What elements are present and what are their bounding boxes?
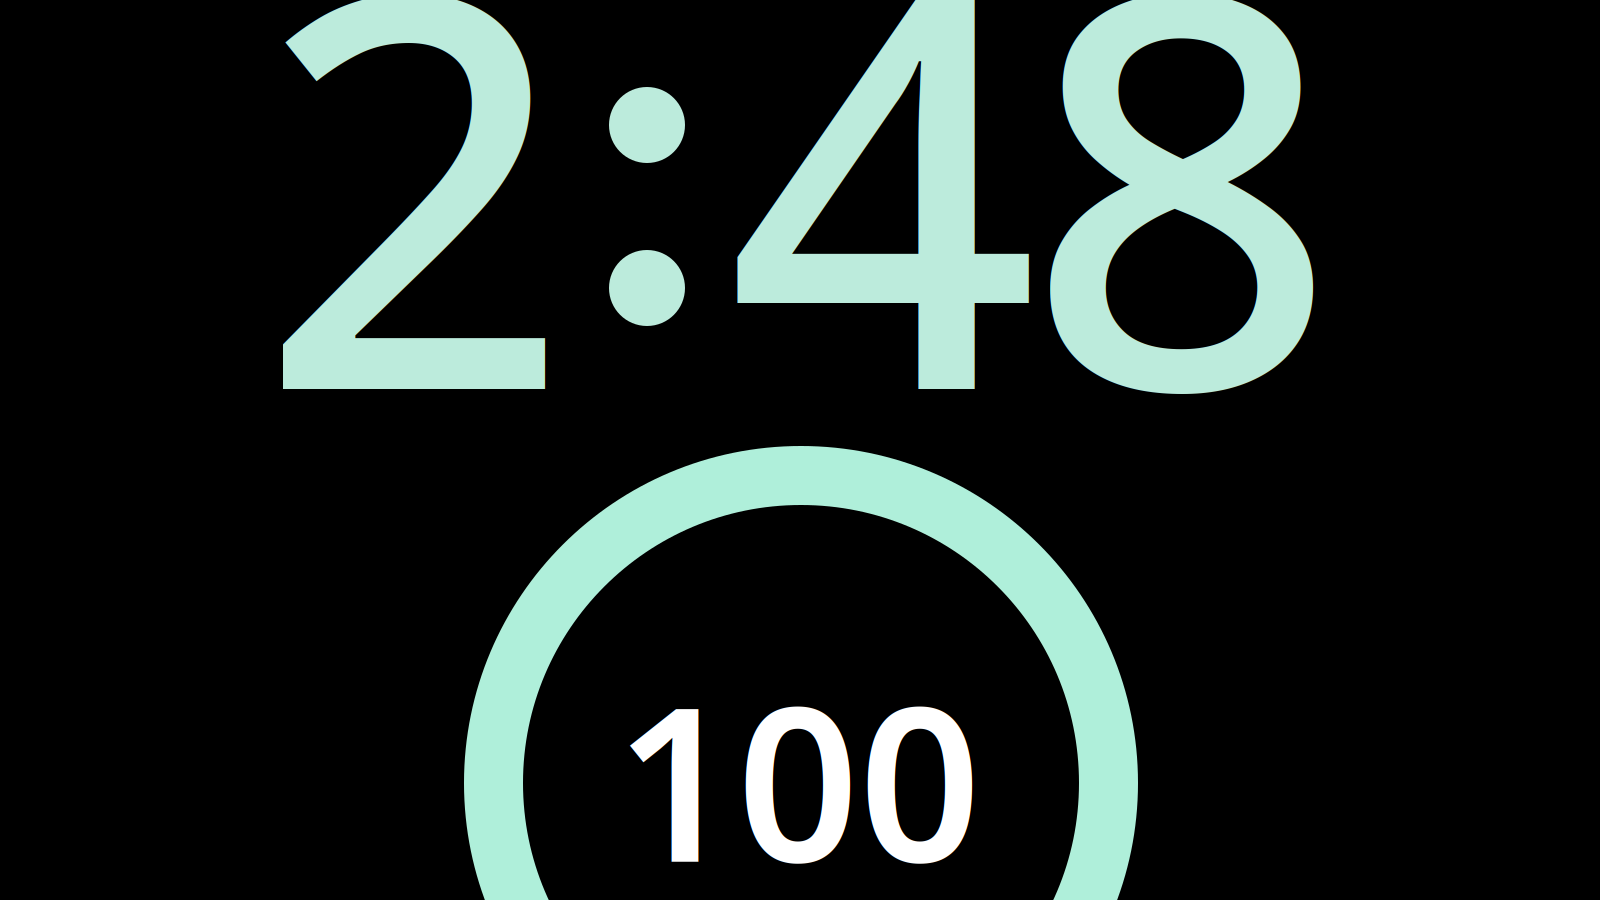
staticText: 2 — [257, 0, 570, 540]
button[interactable]: Timer 2:48, 100 percent complete — [0, 0, 1600, 900]
staticText: 100 — [615, 637, 981, 900]
staticText: 4 — [726, 0, 1039, 540]
staticText: 8 — [1025, 0, 1338, 540]
